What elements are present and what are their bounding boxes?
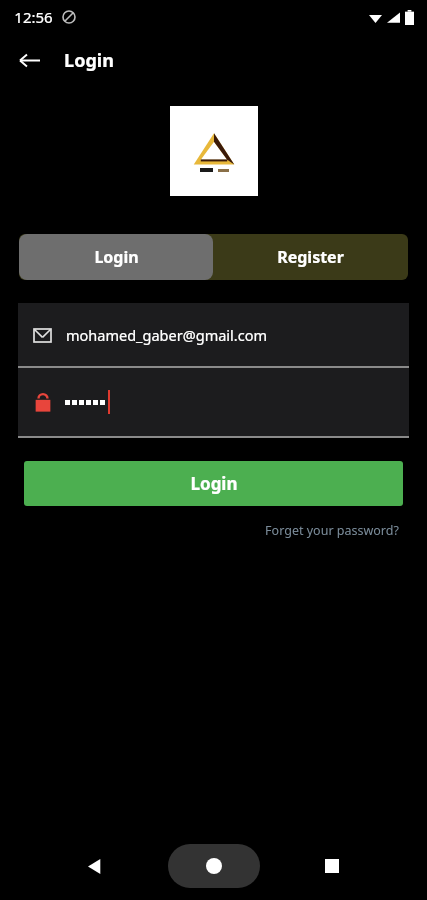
staticText: Login	[190, 472, 238, 495]
staticText: 12:56	[14, 7, 53, 27]
button[interactable]	[18, 368, 409, 436]
button[interactable]: mohamed_gaber@gmail.com	[18, 303, 409, 366]
staticText: Login	[64, 48, 114, 73]
staticText: Forget your password?	[265, 522, 399, 539]
button[interactable]: Login	[24, 461, 403, 506]
button[interactable]: Forget your password?	[261, 518, 403, 543]
button[interactable]: Home	[191, 843, 237, 889]
button[interactable]: Recents	[309, 843, 355, 889]
button[interactable]: Login	[19, 234, 213, 280]
button[interactable]: Register	[213, 234, 408, 280]
button[interactable]: Back	[72, 843, 118, 889]
staticText: mohamed_gaber@gmail.com	[66, 325, 267, 345]
staticText: Register	[277, 246, 344, 268]
staticText: Login	[94, 246, 139, 268]
button[interactable]: Back	[9, 40, 49, 80]
